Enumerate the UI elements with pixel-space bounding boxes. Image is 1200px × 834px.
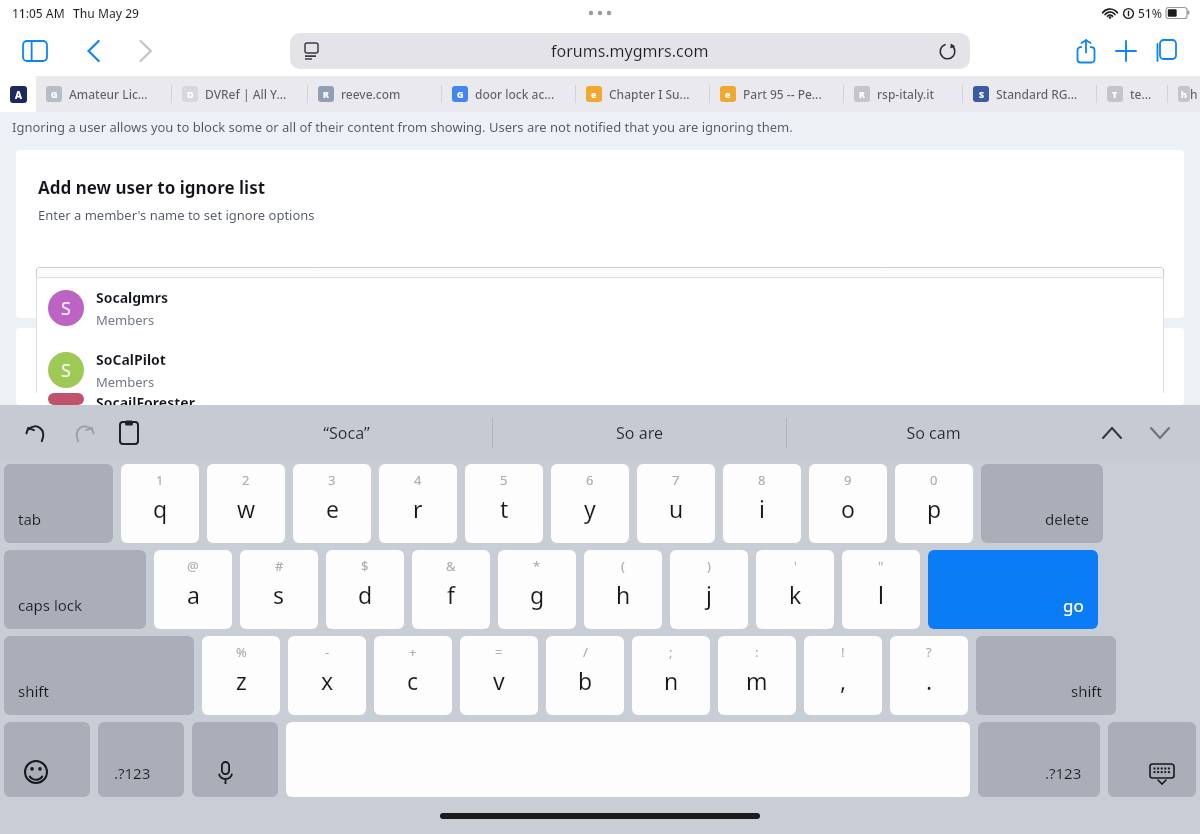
button[interactable]: $ [326, 550, 404, 629]
button[interactable]: + [374, 636, 452, 715]
staticText: Standard RG... [996, 86, 1078, 102]
button[interactable]: * [498, 550, 576, 629]
button[interactable]: & [412, 550, 490, 629]
button[interactable]: Show sidebar [18, 34, 52, 68]
button[interactable]: Emoji [4, 722, 90, 797]
staticText: 8 [758, 471, 766, 489]
button[interactable]: Share [1066, 31, 1106, 71]
staticText: A [15, 88, 22, 102]
button[interactable]: Redo [66, 416, 100, 450]
button[interactable]: go [928, 550, 1098, 629]
button[interactable]: caps lock [4, 550, 146, 629]
button[interactable]: New tab [1106, 31, 1146, 71]
button[interactable]: 7 [637, 464, 715, 543]
button[interactable]: R [844, 76, 962, 112]
staticText: t [500, 493, 509, 524]
button[interactable]: Reload [934, 38, 960, 64]
button[interactable]: : [718, 636, 796, 715]
button[interactable]: - [288, 636, 366, 715]
button[interactable]: 1 [121, 464, 199, 543]
button[interactable]: delete [981, 464, 1103, 543]
button[interactable]: Previous field [1094, 415, 1130, 451]
staticText: Members [96, 311, 155, 329]
staticText: Thu May 29 [73, 5, 139, 21]
button[interactable]: 2 [207, 464, 285, 543]
button[interactable]: .?123 [98, 722, 184, 797]
staticText: ( [621, 557, 625, 575]
button[interactable]: G [36, 76, 171, 112]
button[interactable]: ? [890, 636, 968, 715]
button[interactable]: G [442, 76, 575, 112]
button[interactable]: 9 [809, 464, 887, 543]
staticText: 11:05 AM [12, 5, 65, 21]
staticText: G [457, 88, 464, 100]
button[interactable]: A [0, 76, 36, 112]
staticText: % [236, 643, 247, 661]
button[interactable]: / [546, 636, 624, 715]
staticText: 9 [844, 471, 852, 489]
button[interactable]: T [1097, 76, 1167, 112]
button[interactable]: Show all tabs [1146, 31, 1186, 71]
button[interactable]: e [576, 76, 709, 112]
staticText: 51% [1138, 5, 1162, 21]
button[interactable]: .?123 [978, 722, 1100, 797]
button[interactable]: ; [632, 636, 710, 715]
button[interactable]: 6 [551, 464, 629, 543]
button[interactable]: % [202, 636, 280, 715]
button[interactable]: Next field [1142, 415, 1178, 451]
button[interactable]: SocailForester [36, 393, 1164, 405]
button[interactable]: So are [493, 405, 786, 460]
button[interactable]: S [963, 76, 1096, 112]
staticText: delete [1045, 509, 1089, 529]
button[interactable]: ' [756, 550, 834, 629]
staticText: u [669, 493, 684, 524]
button[interactable]: R [308, 76, 441, 112]
staticText: , [840, 665, 847, 696]
button[interactable]: tab [4, 464, 113, 543]
button[interactable]: D [172, 76, 307, 112]
button[interactable]: forums.mygmrs.com [290, 33, 970, 69]
button[interactable]: @ [154, 550, 232, 629]
staticText: forums.mygmrs.com [551, 40, 709, 62]
button[interactable]: 4 [379, 464, 457, 543]
button[interactable]: Paste [112, 416, 146, 450]
button[interactable]: 0 [895, 464, 973, 543]
button[interactable]: 5 [465, 464, 543, 543]
button[interactable]: ! [804, 636, 882, 715]
staticText: R [323, 88, 329, 100]
button[interactable]: Hide keyboard [1108, 722, 1196, 797]
button[interactable]: # [240, 550, 318, 629]
button[interactable]: 3 [293, 464, 371, 543]
button[interactable]: Soca [36, 267, 1164, 305]
staticText: s [273, 579, 285, 610]
staticText: o [841, 493, 855, 524]
button[interactable]: = [460, 636, 538, 715]
button[interactable]: e [710, 76, 843, 112]
button[interactable]: Undo [20, 416, 54, 450]
button[interactable]: ) [670, 550, 748, 629]
staticText: . [926, 665, 933, 696]
button[interactable]: S [36, 277, 1164, 339]
button[interactable]: shift [4, 636, 194, 715]
staticText: i [759, 493, 765, 524]
staticText: j [706, 579, 712, 610]
button[interactable]: S [36, 339, 1164, 401]
button[interactable]: shift [976, 636, 1116, 715]
button[interactable]: “Soca” [200, 405, 492, 460]
button[interactable]: So cam [787, 405, 1080, 460]
button[interactable]: h [1168, 76, 1200, 112]
button[interactable]: " [842, 550, 920, 629]
staticText: ) [707, 557, 711, 575]
button[interactable]: Dictate [192, 722, 278, 797]
staticText: v [493, 665, 505, 696]
staticText: & [446, 557, 456, 575]
button[interactable]: Back [76, 34, 110, 68]
staticText: e [326, 493, 339, 524]
button[interactable]: 8 [723, 464, 801, 543]
button[interactable]: Forward [128, 34, 162, 68]
button[interactable]: ( [584, 550, 662, 629]
staticText: caps lock [18, 595, 83, 615]
staticText: shift [1071, 681, 1102, 701]
staticText: d [358, 579, 373, 610]
